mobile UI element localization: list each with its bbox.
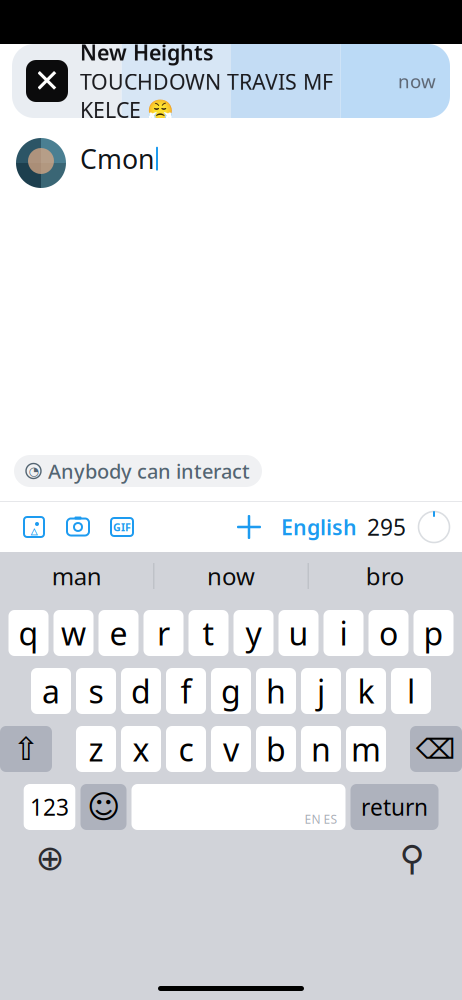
staticText: z: [88, 728, 103, 770]
button[interactable]: p: [413, 610, 453, 656]
staticText: c: [178, 728, 193, 770]
staticText: y: [245, 612, 261, 654]
staticText: EN ES: [304, 811, 337, 827]
button[interactable]: z: [76, 726, 116, 772]
staticText: ⇧: [12, 731, 39, 767]
button[interactable]: w: [53, 610, 93, 656]
button[interactable]: man: [0, 552, 153, 600]
staticText: f: [180, 670, 191, 712]
button[interactable]: i: [323, 610, 363, 656]
staticText: n: [311, 728, 331, 770]
button[interactable]: ✕: [12, 44, 450, 118]
staticText: w: [61, 612, 86, 654]
staticText: b: [266, 728, 286, 770]
button[interactable]: d: [121, 668, 161, 714]
button[interactable]: Emoji: [80, 784, 126, 830]
staticText: m: [351, 728, 381, 770]
button[interactable]: Delete: [410, 726, 462, 772]
button[interactable]: Add post: [227, 505, 271, 549]
staticText: Anybody can interact: [48, 458, 250, 484]
staticText: bro: [366, 560, 405, 592]
staticText: s: [88, 670, 103, 712]
button[interactable]: k: [346, 668, 386, 714]
staticText: ◔: [28, 464, 38, 478]
button[interactable]: now: [154, 552, 308, 600]
staticText: English: [281, 513, 357, 541]
staticText: e: [109, 612, 127, 654]
button[interactable]: Add photo: [12, 505, 56, 549]
button[interactable]: c: [166, 726, 206, 772]
button[interactable]: 123: [23, 784, 75, 830]
staticText: GIF: [113, 520, 131, 534]
button[interactable]: m: [346, 726, 386, 772]
button[interactable]: a: [31, 668, 71, 714]
staticText: j: [317, 670, 325, 712]
staticText: ⊕: [35, 838, 64, 878]
staticText: ☺: [87, 789, 120, 825]
staticText: v: [223, 728, 239, 770]
button[interactable]: l: [391, 668, 431, 714]
staticText: o: [379, 612, 398, 654]
staticText: d: [131, 670, 151, 712]
button[interactable]: space: [131, 784, 345, 830]
staticText: 123: [30, 792, 69, 822]
staticText: l: [407, 670, 415, 712]
button[interactable]: Shift: [0, 726, 52, 772]
staticText: q: [18, 612, 38, 654]
button[interactable]: n: [301, 726, 341, 772]
button[interactable]: b: [256, 726, 296, 772]
staticText: now: [207, 560, 255, 592]
staticText: New Heights: [80, 38, 214, 66]
staticText: g: [221, 670, 241, 712]
staticText: x: [132, 728, 149, 770]
button[interactable]: r: [143, 610, 183, 656]
staticText: 295: [367, 512, 406, 542]
button[interactable]: q: [8, 610, 48, 656]
button[interactable]: v: [211, 726, 251, 772]
staticText: a: [42, 670, 60, 712]
staticText: h: [266, 670, 286, 712]
button[interactable]: English: [271, 505, 367, 549]
staticText: ⚲: [399, 838, 424, 878]
staticText: now: [398, 69, 436, 93]
button[interactable]: j: [301, 668, 341, 714]
button[interactable]: Camera: [56, 505, 100, 549]
staticText: p: [423, 612, 443, 654]
staticText: ✕: [33, 63, 60, 99]
button[interactable]: u: [278, 610, 318, 656]
staticText: ▵: [30, 522, 37, 539]
button[interactable]: GIF: [100, 505, 144, 549]
staticText: ⌫: [416, 733, 456, 765]
staticText: return: [361, 792, 428, 822]
staticText: TOUCHDOWN TRAVIS MF KELCE 😤: [80, 67, 333, 124]
button[interactable]: h: [256, 668, 296, 714]
staticText: t: [202, 612, 214, 654]
button[interactable]: g: [211, 668, 251, 714]
button[interactable]: f: [166, 668, 206, 714]
staticText: Cmon: [80, 141, 154, 176]
staticText: r: [157, 612, 170, 654]
button[interactable]: o: [368, 610, 408, 656]
button[interactable]: t: [188, 610, 228, 656]
button[interactable]: s: [76, 668, 116, 714]
button[interactable]: ◔: [14, 455, 262, 487]
staticText: man: [52, 560, 102, 592]
staticText: u: [288, 612, 308, 654]
button[interactable]: return: [350, 784, 438, 830]
button[interactable]: y: [233, 610, 273, 656]
staticText: k: [357, 670, 374, 712]
button[interactable]: bro: [309, 552, 462, 600]
button[interactable]: Switch keyboard: [28, 836, 72, 880]
staticText: i: [339, 612, 347, 654]
button[interactable]: x: [121, 726, 161, 772]
button[interactable]: Dictation: [390, 836, 434, 880]
button[interactable]: e: [98, 610, 138, 656]
